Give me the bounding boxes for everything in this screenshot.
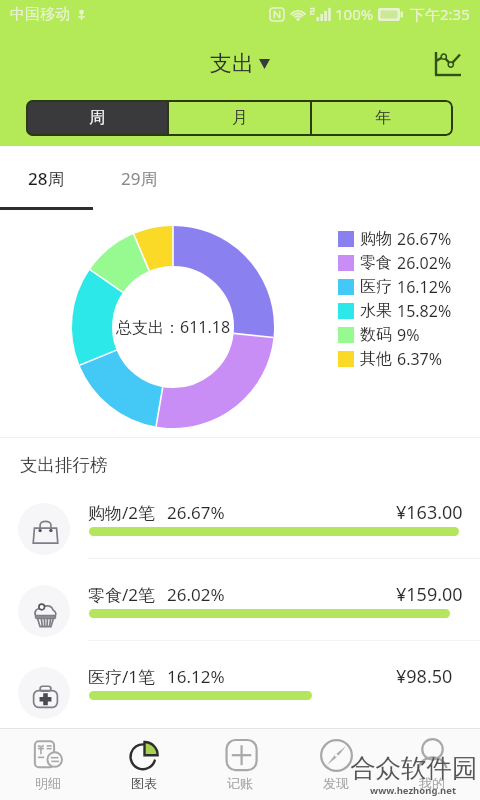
staticText: 9%: [397, 324, 420, 346]
button[interactable]: 月: [169, 100, 310, 136]
staticText: 总支出：611.18: [116, 316, 231, 338]
staticText: ¥159.00: [396, 582, 463, 607]
button[interactable]: 29周: [93, 146, 186, 208]
staticText: 周: [89, 108, 105, 128]
staticText: 支出排行榜: [20, 454, 108, 476]
button[interactable]: 记账: [192, 729, 288, 800]
staticText: 发现: [323, 775, 349, 791]
staticText: 我的: [419, 775, 445, 791]
staticText: 29周: [121, 167, 158, 190]
staticText: 零食: [360, 253, 392, 273]
staticText: 购物: [360, 229, 392, 249]
staticText: 26.02%: [397, 252, 452, 274]
staticText: 26.02%: [167, 583, 225, 606]
staticText: 其他: [360, 349, 392, 369]
staticText: 下午2:35: [410, 4, 470, 24]
staticText: 医疗/1笔: [88, 665, 156, 688]
button[interactable]: 支出: [202, 50, 278, 78]
staticText: ¥98.50: [396, 664, 453, 689]
button[interactable]: 医疗/1笔: [0, 658, 480, 740]
staticText: 年: [375, 108, 391, 128]
staticText: 100%: [335, 4, 374, 24]
staticText: 26.67%: [397, 228, 452, 250]
button[interactable]: 明细: [0, 729, 96, 800]
staticText: ¥163.00: [396, 500, 463, 525]
staticText: 图表: [131, 775, 157, 791]
staticText: 中国移动: [10, 5, 70, 24]
button[interactable]: Trend chart: [430, 50, 466, 78]
staticText: 明细: [35, 775, 61, 791]
staticText: 月: [232, 108, 248, 128]
button[interactable]: 购物/2笔: [0, 494, 480, 576]
staticText: 支出: [210, 50, 254, 78]
staticText: 记账: [227, 775, 253, 791]
staticText: 水果: [360, 301, 392, 321]
button[interactable]: 我的: [384, 729, 480, 800]
button[interactable]: 图表: [96, 729, 192, 800]
staticText: www.hezhong.net: [370, 784, 457, 797]
staticText: 16.12%: [397, 276, 452, 298]
staticText: 数码: [360, 325, 392, 345]
staticText: 购物/2笔: [88, 501, 156, 524]
button[interactable]: 周: [26, 100, 167, 136]
staticText: 16.12%: [167, 665, 225, 688]
button[interactable]: 零食/2笔: [0, 576, 480, 658]
button[interactable]: 28周: [0, 146, 93, 208]
staticText: 医疗: [360, 277, 392, 297]
staticText: 26.67%: [167, 501, 225, 524]
button[interactable]: 发现: [288, 729, 384, 800]
staticText: 合众软件园: [350, 752, 478, 784]
staticText: 15.82%: [397, 300, 452, 322]
staticText: 6.37%: [397, 348, 443, 370]
button[interactable]: 年: [312, 100, 453, 136]
staticText: 28周: [28, 167, 65, 190]
staticText: 零食/2笔: [88, 583, 156, 606]
